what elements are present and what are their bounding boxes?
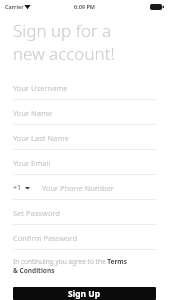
button[interactable]: Your Last Name xyxy=(13,127,156,150)
button[interactable]: +1 xyxy=(13,177,156,200)
button[interactable]: Sign Up xyxy=(13,287,156,300)
button[interactable]: Set Password xyxy=(13,202,156,225)
staticText: Your Username xyxy=(13,83,68,93)
staticText: Set Password xyxy=(13,208,60,218)
staticText: Your Name xyxy=(13,108,53,118)
staticText: Your Email xyxy=(13,158,51,168)
staticText: Sign up for a xyxy=(13,19,112,42)
staticText: Sign Up xyxy=(68,288,101,300)
staticText: 6:09 PM xyxy=(74,3,95,10)
button[interactable]: Confirm Password xyxy=(13,227,156,250)
staticText: new account! xyxy=(13,42,115,65)
staticText: Carrier xyxy=(5,3,24,10)
staticText: Confirm Password xyxy=(13,233,78,243)
button[interactable]: Your Name xyxy=(13,102,156,125)
staticText: +1 xyxy=(13,183,22,193)
staticText: Your Phone Number xyxy=(42,183,114,193)
staticText: Your Last Name xyxy=(13,133,69,143)
button[interactable]: Your Username xyxy=(13,77,156,100)
button[interactable]: In continuing you agree to the Terms & C… xyxy=(13,257,127,275)
button[interactable]: Your Email xyxy=(13,152,156,175)
